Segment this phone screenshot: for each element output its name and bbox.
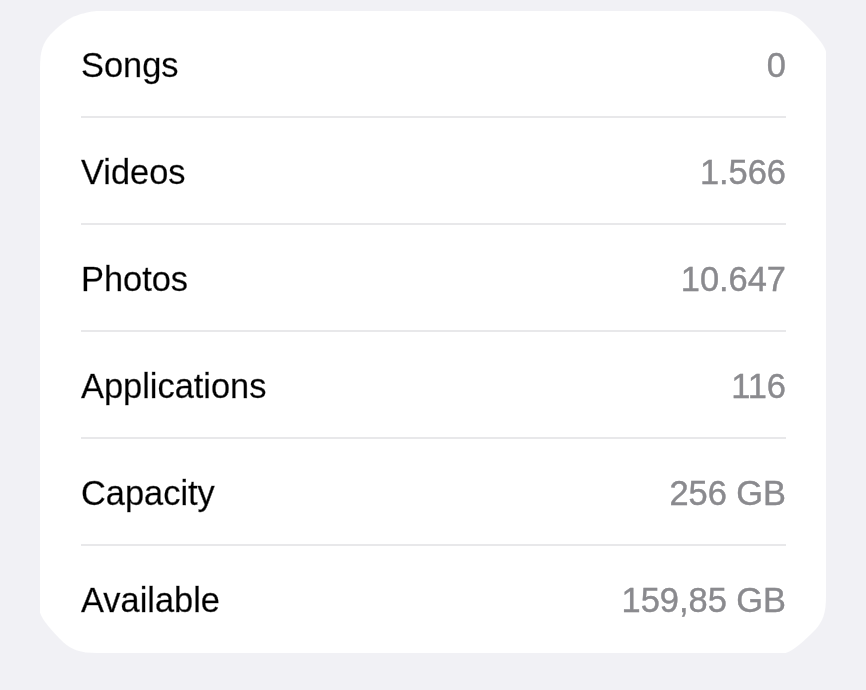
staticText: Songs bbox=[81, 46, 179, 84]
button[interactable]: Capacity bbox=[40, 439, 826, 546]
staticText: Applications bbox=[81, 367, 267, 405]
button[interactable]: Applications bbox=[40, 332, 826, 439]
staticText: Photos bbox=[81, 260, 189, 298]
staticText: 116 bbox=[731, 367, 786, 405]
button[interactable]: Photos bbox=[40, 225, 826, 332]
staticText: Available bbox=[81, 581, 220, 619]
staticText: 10.647 bbox=[680, 260, 786, 298]
staticText: Photos bbox=[81, 260, 189, 298]
staticText: 256 GB bbox=[669, 474, 786, 512]
staticText: 116 bbox=[731, 367, 786, 405]
staticText: Applications bbox=[81, 367, 267, 405]
button[interactable]: Songs bbox=[40, 11, 826, 118]
staticText: Available bbox=[81, 581, 220, 619]
staticText: Songs bbox=[81, 46, 179, 84]
button[interactable]: Videos bbox=[40, 118, 826, 225]
staticText: 0 bbox=[766, 46, 786, 84]
staticText: Capacity bbox=[81, 474, 215, 512]
staticText: 159,85 GB bbox=[621, 581, 786, 619]
staticText: 256 GB bbox=[669, 474, 786, 512]
staticText: 10.647 bbox=[680, 260, 786, 298]
staticText: Videos bbox=[81, 153, 186, 191]
staticText: 1.566 bbox=[699, 153, 786, 191]
staticText: 1.566 bbox=[699, 153, 786, 191]
staticText: 159,85 GB bbox=[621, 581, 786, 619]
staticText: Capacity bbox=[81, 474, 215, 512]
staticText: Videos bbox=[81, 153, 186, 191]
staticText: 0 bbox=[766, 46, 786, 84]
button[interactable]: Available bbox=[40, 546, 826, 653]
